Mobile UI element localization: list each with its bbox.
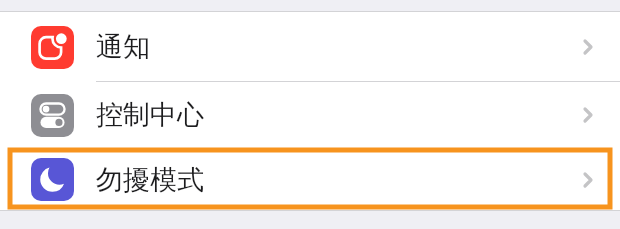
button[interactable]: 勿擾模式 <box>0 148 620 211</box>
staticText: 勿擾模式 <box>96 163 204 197</box>
button[interactable]: 控制中心 <box>0 82 620 148</box>
staticText: 通知 <box>96 30 150 64</box>
staticText: 控制中心 <box>96 98 204 132</box>
button[interactable]: 通知 <box>0 12 620 82</box>
